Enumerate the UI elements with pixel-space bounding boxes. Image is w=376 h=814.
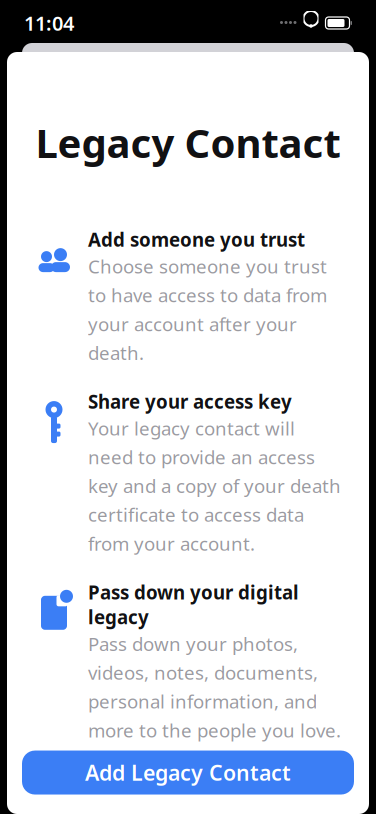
staticText: Legacy Contact <box>35 116 340 169</box>
staticText: 11:04 <box>24 10 74 36</box>
staticText: Add someone you trust <box>88 227 305 252</box>
staticText: Pass down your photos, videos, notes, do… <box>88 631 341 743</box>
staticText: Share your access key <box>88 389 292 414</box>
staticText: Pass down your digital legacy <box>88 580 299 629</box>
button[interactable]: Add Legacy Contact <box>22 750 354 794</box>
staticText: Your legacy contact will need to provide… <box>88 416 341 556</box>
staticText: Add Legacy Contact <box>85 758 291 787</box>
staticText: Choose someone you trust to have access … <box>88 254 327 365</box>
